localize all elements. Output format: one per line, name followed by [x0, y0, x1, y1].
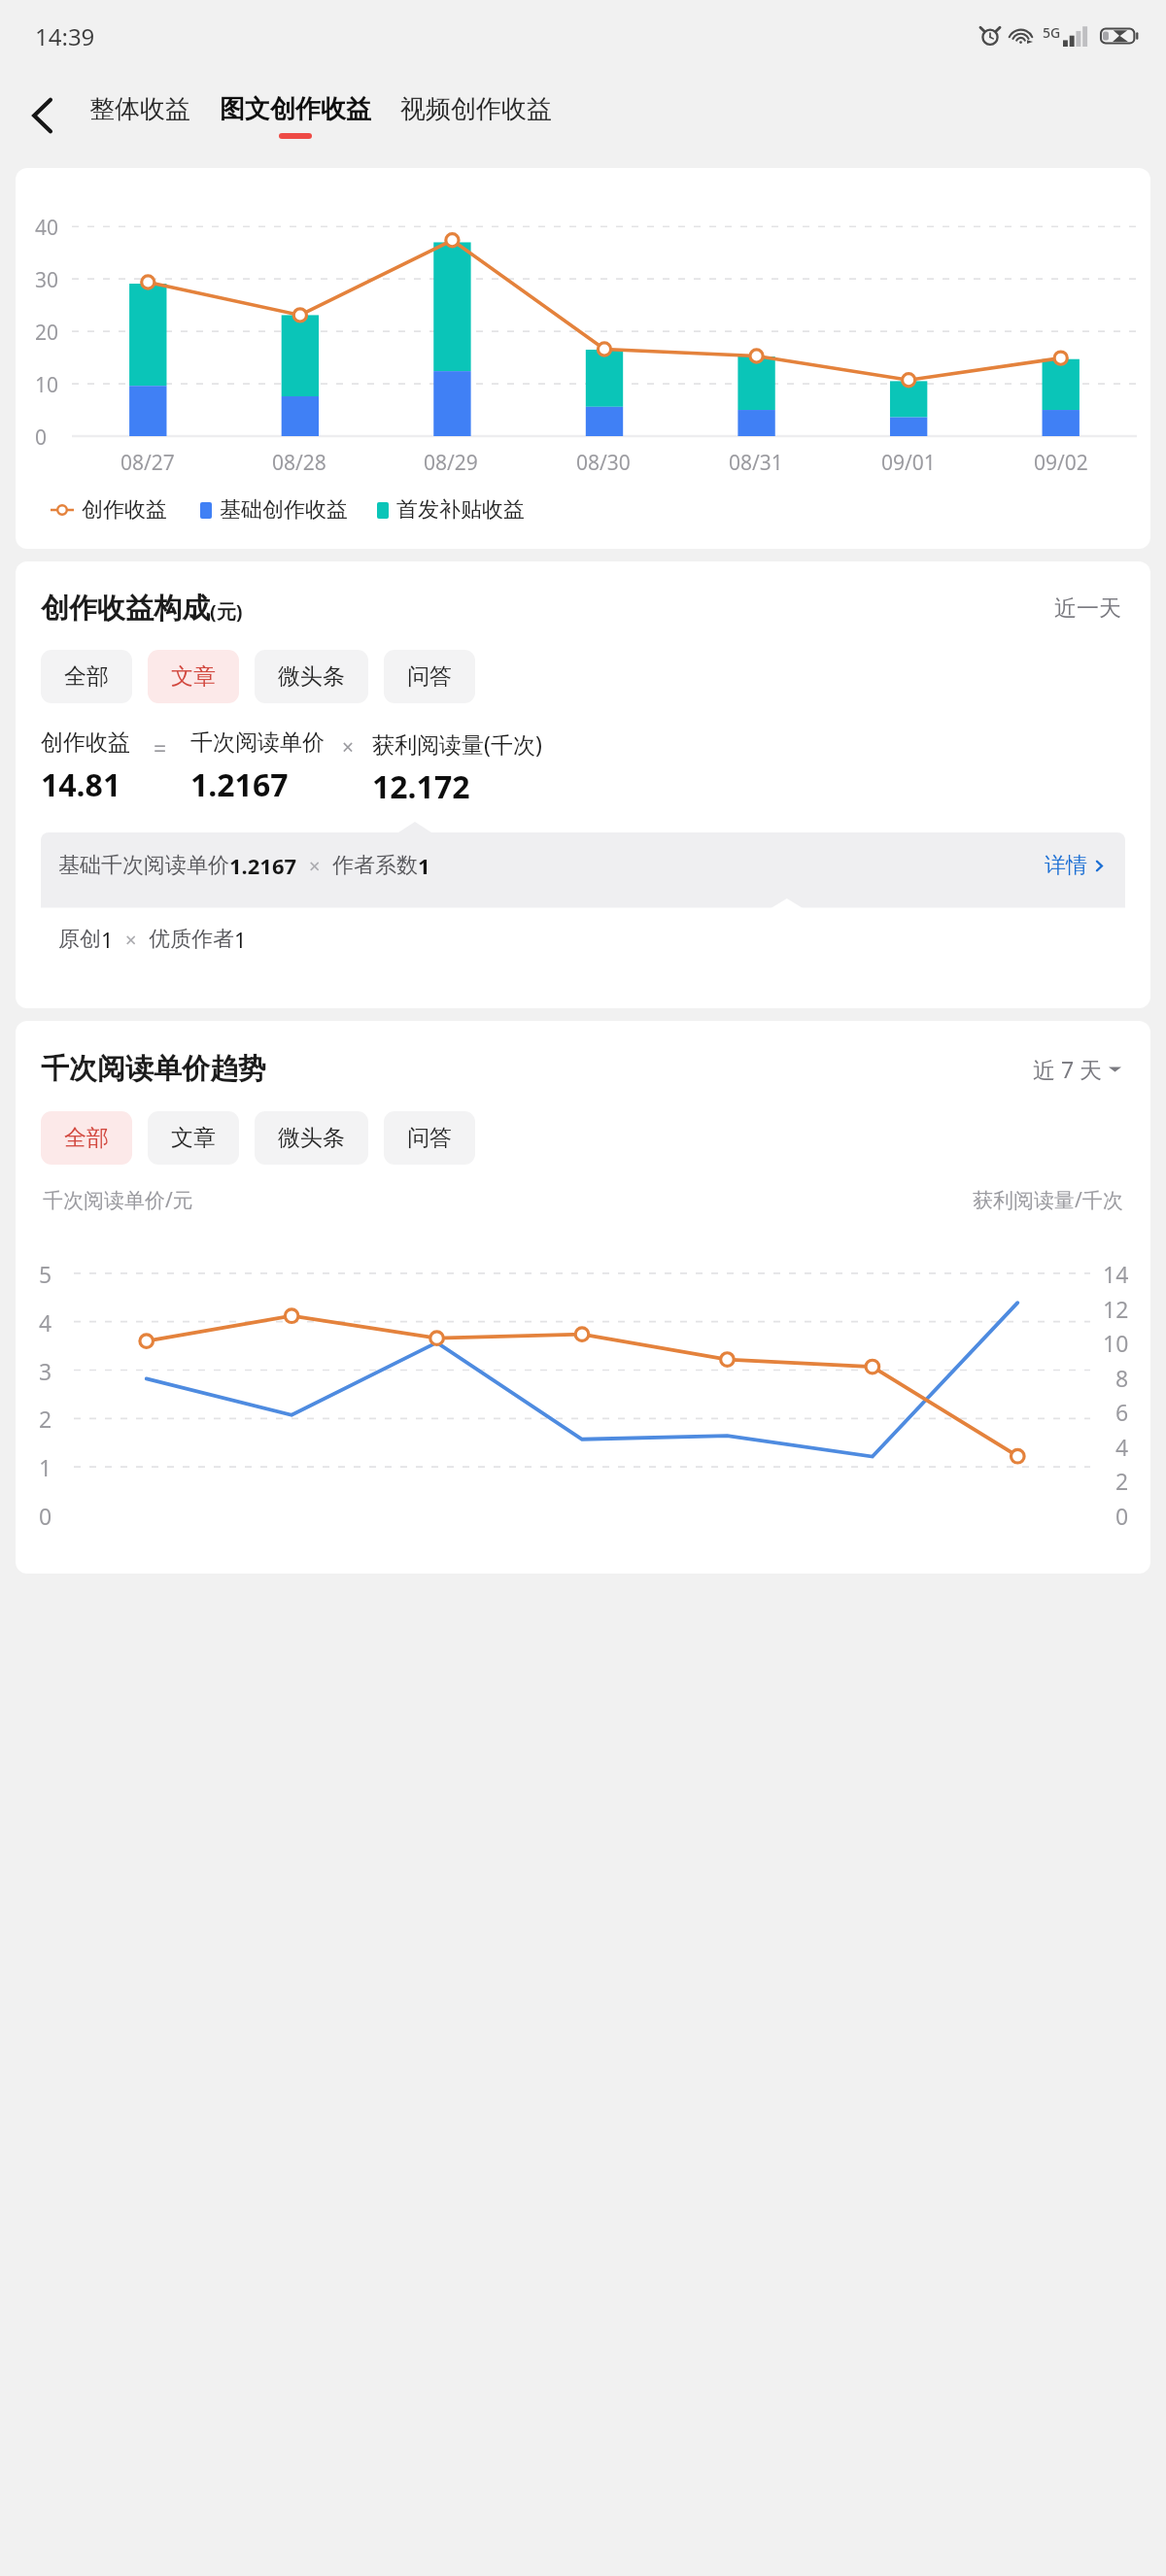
staticText: 09/02	[1034, 449, 1088, 477]
staticText: 获利阅读量(千次)	[372, 729, 542, 759]
staticText: 视频创作收益	[400, 93, 552, 125]
staticText: 1.2167	[190, 763, 289, 806]
staticText: 2	[39, 1404, 52, 1434]
button[interactable]: 整体收益	[86, 91, 194, 141]
staticText: 微头条	[278, 662, 345, 691]
button[interactable]: 首发补贴收益	[377, 496, 525, 524]
button[interactable]: 微头条	[255, 1111, 368, 1165]
button[interactable]: 文章	[148, 1111, 239, 1165]
staticText: 图文创作收益	[220, 93, 371, 125]
staticText: 全部	[64, 1124, 109, 1152]
button[interactable]: 近一天	[1050, 591, 1125, 627]
staticText: 千次阅读单价趋势	[41, 1051, 266, 1087]
staticText: 1	[234, 925, 247, 954]
staticText: 创作收益	[82, 496, 167, 524]
staticText: 5	[39, 1259, 52, 1289]
staticText: 详情	[1045, 852, 1087, 879]
staticText: 08/30	[576, 449, 631, 477]
staticText: 12.172	[372, 765, 470, 808]
staticText: 全部	[64, 662, 109, 691]
staticText: 问答	[407, 1124, 452, 1152]
staticText: 09/01	[881, 449, 936, 477]
staticText: 5G	[1043, 23, 1061, 42]
button[interactable]: 视频创作收益	[396, 91, 556, 141]
staticText: 原创	[58, 926, 101, 953]
staticText: 基础创作收益	[220, 496, 348, 524]
staticText: =	[154, 732, 167, 763]
button[interactable]: 全部	[41, 650, 132, 703]
staticText: 微头条	[278, 1124, 345, 1152]
staticText: 14.81	[41, 763, 121, 806]
staticText: 3	[39, 1356, 52, 1386]
staticText: 整体收益	[89, 93, 190, 125]
button[interactable]: 文章	[148, 650, 239, 703]
button[interactable]: 原创	[41, 909, 1125, 983]
button[interactable]: 创作收益	[51, 496, 167, 524]
staticText: 6	[1115, 1397, 1129, 1427]
staticText: 千次阅读单价/元	[43, 1186, 193, 1214]
staticText: 千次阅读单价	[190, 729, 325, 757]
staticText: 40	[35, 214, 59, 242]
staticText: 1	[101, 925, 114, 954]
staticText: 08/29	[424, 449, 478, 477]
button[interactable]: Back	[16, 87, 72, 144]
staticText: 文章	[171, 1124, 216, 1152]
staticText: 10	[1103, 1328, 1129, 1358]
staticText: ×	[309, 853, 321, 879]
button[interactable]: 问答	[384, 650, 475, 703]
button[interactable]: 近 7 天	[1029, 1050, 1125, 1088]
staticText: 问答	[407, 662, 452, 691]
staticText: 08/31	[729, 449, 783, 477]
staticText: 14	[1103, 1259, 1129, 1289]
staticText: 0	[1115, 1501, 1129, 1531]
staticText: 4	[1115, 1432, 1129, 1462]
staticText: 8	[1115, 1363, 1129, 1393]
staticText: 首发补贴收益	[396, 496, 525, 524]
button[interactable]: 基础创作收益	[200, 496, 348, 524]
staticText: 1	[418, 851, 430, 880]
button[interactable]: 基础千次阅读单价	[41, 832, 1125, 898]
staticText: 优质作者	[149, 926, 234, 953]
staticText: 基础千次阅读单价	[58, 852, 229, 879]
staticText: ×	[342, 733, 355, 762]
staticText: 0	[35, 424, 48, 452]
staticText: 20	[35, 319, 59, 347]
staticText: 10	[35, 371, 59, 399]
staticText: 近一天	[1054, 594, 1121, 623]
staticText: 1	[39, 1452, 52, 1482]
staticText: 30	[35, 266, 59, 294]
staticText: 0	[39, 1501, 52, 1531]
staticText: 作者系数	[332, 852, 418, 879]
staticText: 近 7 天	[1033, 1054, 1103, 1084]
staticText: 1.2167	[229, 851, 297, 880]
staticText: 创作收益构成	[41, 591, 210, 627]
button[interactable]: 问答	[384, 1111, 475, 1165]
staticText: ×	[125, 927, 137, 953]
staticText: 4	[39, 1307, 52, 1338]
staticText: (元)	[210, 598, 243, 625]
button[interactable]: 图文创作收益	[216, 91, 375, 141]
staticText: 2	[1115, 1466, 1129, 1496]
staticText: 获利阅读量/千次	[973, 1186, 1123, 1214]
staticText: 08/27	[120, 449, 175, 477]
staticText: 08/28	[272, 449, 326, 477]
staticText: 14:39	[35, 20, 95, 52]
staticText: 创作收益	[41, 729, 130, 757]
staticText: 12	[1103, 1294, 1129, 1324]
button[interactable]: 全部	[41, 1111, 132, 1165]
button[interactable]: 微头条	[255, 650, 368, 703]
staticText: 文章	[171, 662, 216, 691]
